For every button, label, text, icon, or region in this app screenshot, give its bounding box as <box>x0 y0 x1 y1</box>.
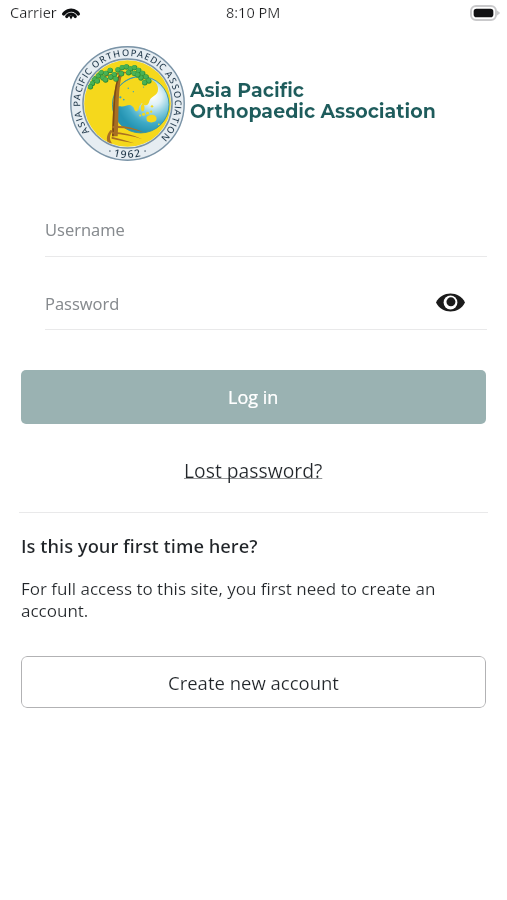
staticText: Password <box>45 292 120 314</box>
button[interactable]: Show password <box>434 286 466 318</box>
button[interactable]: Lost password? <box>184 457 323 483</box>
button[interactable]: Log in <box>21 370 486 424</box>
staticText: Carrier <box>10 3 57 23</box>
staticText: Is this your first time here? <box>21 533 258 558</box>
staticText: 8:10 PM <box>226 3 281 23</box>
staticText: Create new account <box>168 670 339 695</box>
staticText: Log in <box>228 385 279 410</box>
staticText: Username <box>45 218 125 240</box>
staticText: Orthopaedic Association <box>190 100 436 123</box>
button[interactable]: Create new account <box>21 656 486 708</box>
staticText: Asia Pacific <box>190 79 305 102</box>
staticText: For full access to this site, you first … <box>21 577 445 622</box>
